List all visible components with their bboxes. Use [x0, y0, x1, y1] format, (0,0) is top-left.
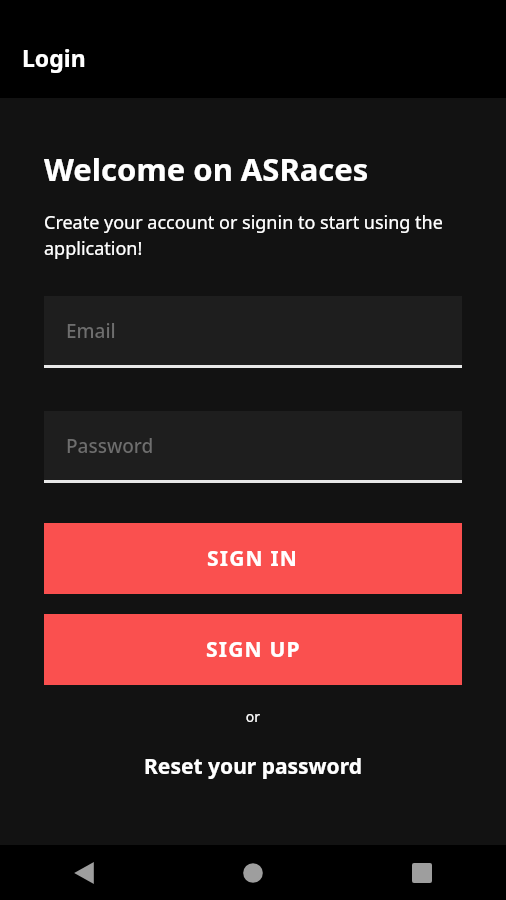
button[interactable]: Password [44, 411, 462, 483]
staticText: SIGN UP [206, 635, 301, 664]
staticText: Reset your password [144, 752, 362, 781]
staticText: Create your account or signin to start u… [44, 210, 462, 260]
button[interactable]: SIGN IN [44, 523, 462, 594]
button[interactable]: Email [44, 296, 462, 368]
staticText: Welcome on ASRaces [44, 148, 369, 190]
button[interactable]: Recent apps [337, 863, 506, 883]
staticText: Password [66, 433, 154, 459]
button[interactable]: SIGN UP [44, 614, 462, 685]
button[interactable]: Back [0, 861, 168, 885]
staticText: Email [66, 318, 116, 344]
staticText: or [44, 707, 462, 726]
button[interactable]: Home [168, 861, 337, 885]
staticText: Login [22, 42, 86, 73]
button[interactable]: Reset your password [44, 748, 462, 785]
staticText: SIGN IN [207, 544, 299, 573]
